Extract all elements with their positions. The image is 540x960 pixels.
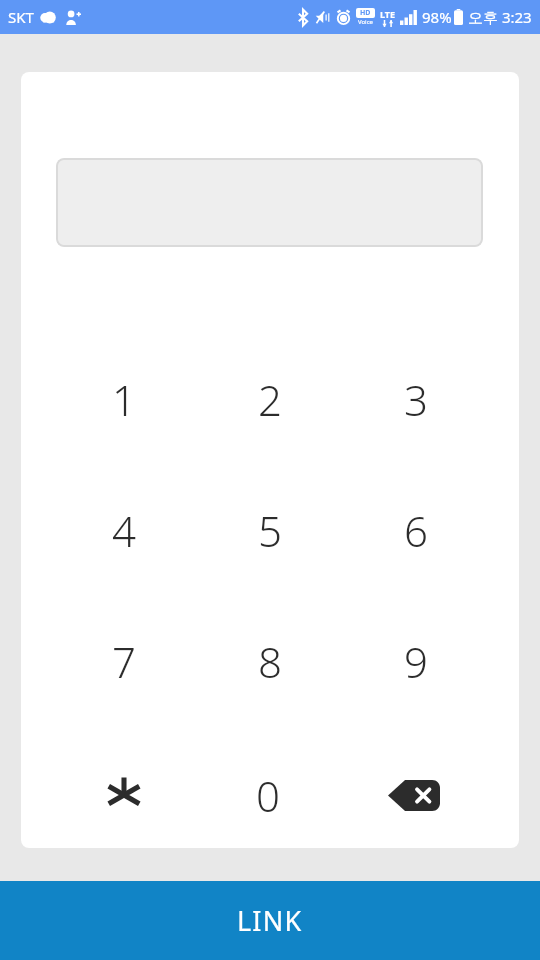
staticText: 0 <box>256 767 280 824</box>
staticText: 9 <box>404 633 428 690</box>
staticText: 오후 3:23 <box>468 7 532 27</box>
button[interactable]: LINK <box>0 881 540 960</box>
button[interactable]: 8 <box>197 616 343 706</box>
staticText: Voice <box>358 18 373 26</box>
staticText: 3 <box>404 371 428 428</box>
button[interactable]: 6 <box>343 485 489 575</box>
staticText: 4 <box>112 502 136 559</box>
staticText: LTE <box>380 8 396 20</box>
staticText: LINK <box>237 902 303 939</box>
button[interactable]: Phone number input <box>56 158 483 247</box>
staticText: 98% <box>422 7 452 27</box>
button[interactable]: 9 <box>343 616 489 706</box>
staticText: 1 <box>112 371 136 428</box>
button[interactable]: 0 <box>195 750 341 840</box>
staticText: 2 <box>258 371 282 428</box>
staticText: SKT <box>8 7 34 27</box>
button[interactable]: 1 <box>51 354 197 444</box>
button[interactable]: 5 <box>197 485 343 575</box>
staticText: 5 <box>258 502 282 559</box>
button[interactable] <box>51 750 197 840</box>
staticText: HD <box>360 8 371 18</box>
staticText: 7 <box>112 633 136 690</box>
button[interactable]: 3 <box>343 354 489 444</box>
staticText: 8 <box>258 633 282 690</box>
staticText: 6 <box>404 502 428 559</box>
button[interactable]: 2 <box>197 354 343 444</box>
button[interactable]: Backspace <box>341 750 487 840</box>
button[interactable]: 7 <box>51 616 197 706</box>
button[interactable]: 4 <box>51 485 197 575</box>
